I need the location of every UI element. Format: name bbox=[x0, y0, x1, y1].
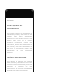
staticText: HISTORY bbox=[7, 19, 14, 21]
staticText: The Great Library of Alexandria in Alexa… bbox=[7, 32, 32, 54]
button[interactable] bbox=[6, 10, 33, 18]
staticText: The Library of Alexandria bbox=[7, 24, 32, 30]
staticText: History and decline bbox=[7, 56, 27, 59]
staticText: The library is famous for having been bu… bbox=[7, 60, 32, 72]
